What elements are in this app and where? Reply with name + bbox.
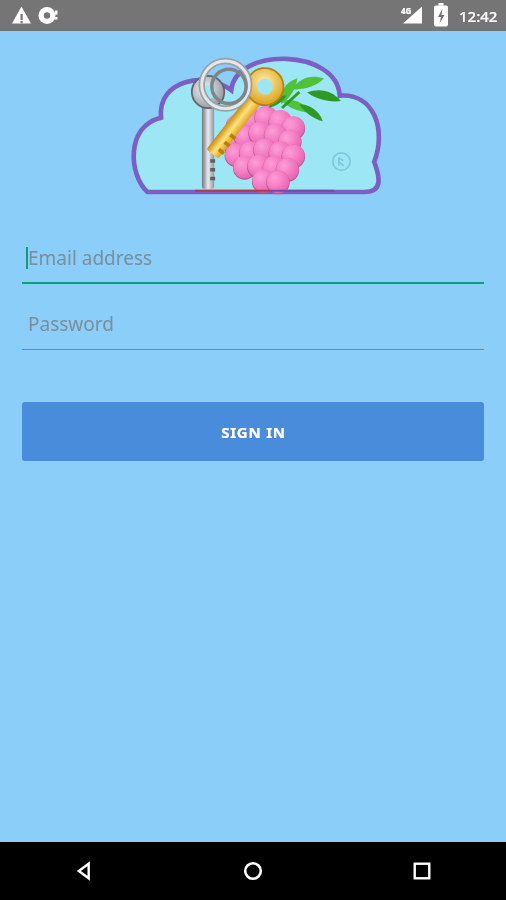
staticText: Password <box>28 311 114 337</box>
staticText: 4G <box>401 5 412 16</box>
staticText: SIGN IN <box>221 422 286 442</box>
button[interactable]: Back <box>0 842 168 900</box>
staticText: Email address <box>28 245 153 271</box>
staticText: 12:42 <box>459 6 498 26</box>
button[interactable]: Password <box>22 304 484 350</box>
button[interactable]: Home <box>168 842 337 900</box>
button[interactable]: SIGN IN <box>22 402 484 461</box>
button[interactable]: Recent apps <box>337 842 506 900</box>
button[interactable]: Email address <box>22 238 484 284</box>
